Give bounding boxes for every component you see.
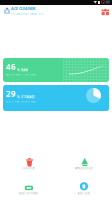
staticText: 22.61 G Free / 31.64 G Total	[6, 100, 36, 103]
button[interactable]: Memory Boost	[57, 154, 110, 174]
staticText: App Lock	[77, 191, 89, 195]
staticText: 29	[6, 88, 16, 99]
button[interactable]: Rewards	[101, 8, 108, 11]
staticText: 46	[6, 61, 16, 72]
staticText: Memory Boost	[74, 166, 92, 170]
staticText: ACE CLEANER	[11, 6, 36, 11]
staticText: Junk Files	[22, 166, 34, 170]
button[interactable]: App Uninstall	[2, 179, 55, 199]
button[interactable]: Junk Files	[2, 154, 55, 174]
staticText: % STORAGE	[17, 95, 35, 99]
button[interactable]: 46	[3, 58, 109, 82]
staticText: 800.14 M Free / 1.48 G Total	[6, 73, 36, 76]
staticText: 12:00	[101, 1, 110, 4]
staticText: App Uninstall	[19, 191, 38, 195]
staticText: Professional Cleaner Tool	[11, 12, 44, 16]
button[interactable]: App Lock	[57, 179, 110, 199]
staticText: % RAM	[17, 68, 28, 72]
button[interactable]: 29	[3, 85, 109, 111]
